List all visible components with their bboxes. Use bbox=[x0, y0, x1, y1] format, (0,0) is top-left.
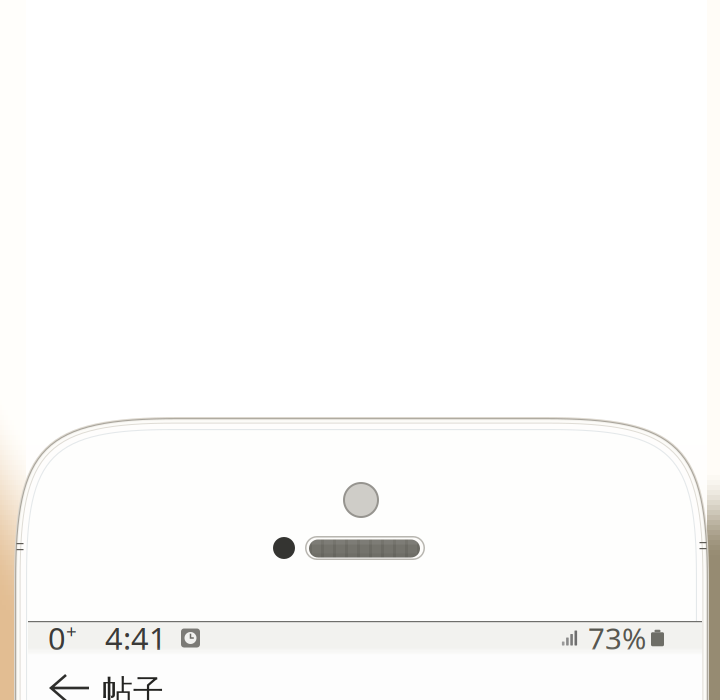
staticText: 0 bbox=[48, 618, 66, 658]
staticText: 4:41 bbox=[105, 618, 167, 658]
button[interactable]: Back bbox=[28, 655, 101, 700]
staticText: + bbox=[66, 619, 77, 643]
staticText: 帖子 bbox=[102, 672, 164, 700]
staticText: 73% bbox=[588, 618, 646, 657]
